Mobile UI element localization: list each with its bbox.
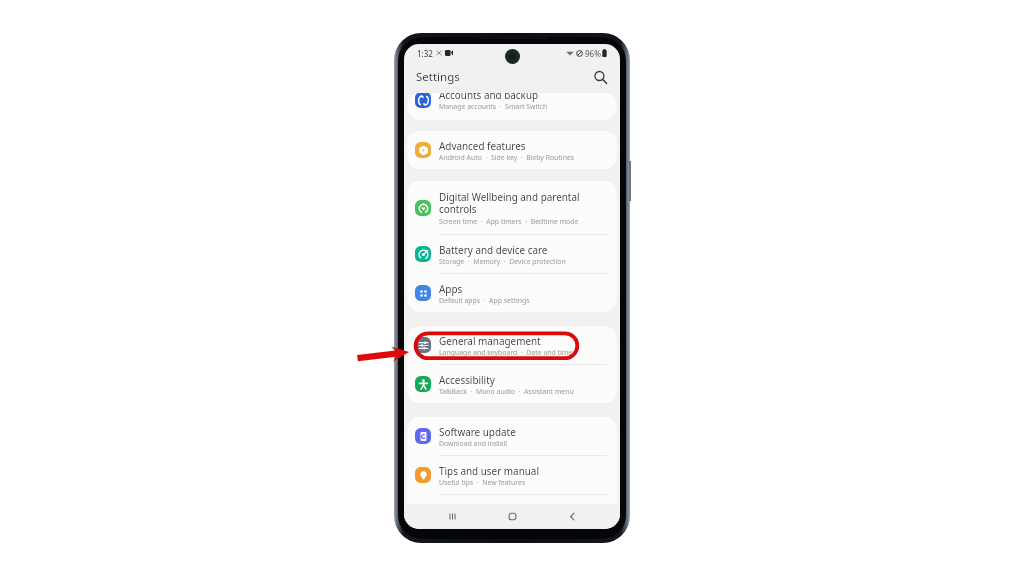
- button[interactable]: Battery and device care: [407, 235, 617, 274]
- button[interactable]: Tips and user manual: [407, 456, 617, 495]
- staticText: Apps: [439, 282, 463, 295]
- staticText: 96%: [585, 48, 601, 59]
- button[interactable]: Home: [482, 504, 542, 529]
- button[interactable]: Apps: [407, 274, 617, 312]
- button[interactable]: Search: [589, 66, 611, 88]
- button[interactable]: Recent apps: [422, 504, 482, 529]
- staticText: Useful tips · New features: [439, 478, 526, 487]
- staticText: Digital Wellbeing and parental controls: [439, 190, 580, 216]
- staticText: 1:32: [417, 48, 433, 59]
- staticText: Advanced features: [439, 139, 526, 152]
- staticText: General management: [439, 334, 541, 347]
- staticText: TalkBack · Mono audio · Assistant menu: [439, 387, 574, 396]
- button[interactable]: Digital Wellbeing and parental controls: [407, 181, 617, 235]
- button[interactable]: General management: [407, 326, 617, 365]
- staticText: Manage accounts · Smart Switch: [439, 102, 548, 111]
- staticText: Accessibility: [439, 373, 495, 386]
- staticText: Screen time · App timers · Bedtime mode: [439, 217, 579, 226]
- staticText: Software update: [439, 425, 516, 438]
- staticText: Accounts and backup: [439, 93, 539, 101]
- staticText: Default apps · App settings: [439, 296, 530, 305]
- staticText: Language and keyboard · Date and time: [439, 348, 573, 357]
- button[interactable]: Back: [542, 504, 602, 529]
- staticText: Settings: [416, 69, 460, 85]
- staticText: Android Auto · Side key · Bixby Routines: [439, 153, 575, 162]
- button[interactable]: Advanced features: [407, 131, 617, 169]
- staticText: Storage · Memory · Device protection: [439, 257, 566, 266]
- staticText: Battery and device care: [439, 243, 548, 256]
- button[interactable]: Accessibility: [407, 365, 617, 403]
- button[interactable]: Software update: [407, 417, 617, 456]
- button[interactable]: Accounts and backup: [407, 93, 617, 113]
- staticText: Download and install: [439, 439, 507, 448]
- staticText: Tips and user manual: [439, 464, 539, 477]
